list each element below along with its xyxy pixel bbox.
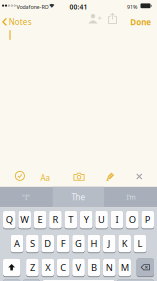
staticText: Z — [30, 261, 35, 273]
button[interactable]: C — [0, 207, 13, 226]
button[interactable]: Add people — [0, 0, 10, 10]
button[interactable]: F — [0, 207, 13, 226]
button[interactable]: E — [0, 207, 13, 226]
staticText: G — [75, 237, 82, 250]
button[interactable]: Next keyboard — [0, 207, 17, 218]
button[interactable]: M — [0, 207, 13, 226]
staticText: Done — [130, 17, 151, 27]
staticText: Y — [84, 213, 89, 226]
button[interactable]: P — [0, 207, 13, 226]
staticText: "I" — [22, 193, 30, 201]
button[interactable]: Shift — [0, 207, 17, 226]
staticText: S — [30, 237, 35, 250]
staticText: U — [98, 213, 105, 226]
button[interactable]: V — [0, 207, 13, 226]
button[interactable]: W — [0, 207, 13, 226]
button[interactable]: U — [0, 207, 13, 226]
button[interactable]: Notes — [0, 0, 30, 11]
button[interactable]: Return — [0, 207, 37, 218]
staticText: O — [129, 213, 136, 226]
staticText: D — [44, 237, 51, 250]
button[interactable]: Q — [0, 207, 13, 226]
staticText: I'm — [126, 193, 135, 201]
staticText: Notes — [9, 17, 32, 27]
button[interactable]: H — [0, 207, 13, 226]
staticText: H — [90, 237, 97, 250]
button[interactable]: A — [0, 207, 13, 226]
staticText: F — [61, 237, 66, 250]
button[interactable]: Numbers — [0, 207, 17, 218]
button[interactable]: I — [0, 207, 13, 226]
staticText: E — [38, 213, 43, 226]
staticText: M — [121, 261, 129, 273]
staticText: X — [45, 261, 50, 273]
staticText: 91% — [127, 3, 137, 10]
staticText: Aa — [40, 172, 49, 183]
staticText: J — [108, 237, 111, 250]
button[interactable]: Z — [0, 207, 13, 226]
staticText: L — [137, 237, 142, 250]
button[interactable]: Space — [0, 207, 72, 218]
button[interactable]: K — [0, 207, 13, 226]
button[interactable]: Delete — [0, 207, 17, 226]
button[interactable]: D — [0, 207, 13, 226]
button[interactable]: B — [0, 207, 13, 226]
staticText: I — [115, 213, 118, 226]
staticText: 00:41 — [69, 2, 87, 11]
staticText: A — [14, 237, 20, 250]
button[interactable]: Y — [0, 207, 13, 226]
button[interactable]: Sketch — [0, 0, 9, 9]
staticText: B — [91, 261, 97, 273]
staticText: T — [68, 213, 73, 226]
button[interactable]: Share — [0, 0, 9, 11]
button[interactable]: O — [0, 207, 13, 226]
staticText: K — [122, 237, 128, 250]
button[interactable]: Photo — [0, 0, 11, 8]
button[interactable]: Done — [0, 0, 21, 11]
button[interactable]: Formatting — [0, 0, 9, 11]
staticText: The — [71, 192, 85, 202]
button[interactable]: S — [0, 207, 13, 226]
staticText: W — [20, 213, 29, 226]
staticText: C — [60, 261, 66, 273]
button[interactable]: R — [0, 207, 13, 226]
button[interactable]: Dismiss keyboard — [0, 0, 6, 6]
staticText: Q — [6, 213, 13, 226]
button[interactable]: N — [0, 207, 13, 226]
button[interactable]: X — [0, 207, 13, 226]
staticText: R — [52, 213, 58, 226]
staticText: V — [75, 261, 81, 273]
staticText: N — [106, 261, 113, 273]
button[interactable]: L — [0, 207, 13, 226]
button[interactable]: J — [0, 207, 13, 226]
button[interactable]: T — [0, 207, 13, 226]
staticText: P — [145, 213, 151, 226]
staticText: Vodafone-RO — [16, 3, 48, 10]
button[interactable]: Checklist — [0, 0, 10, 10]
button[interactable]: G — [0, 207, 13, 226]
